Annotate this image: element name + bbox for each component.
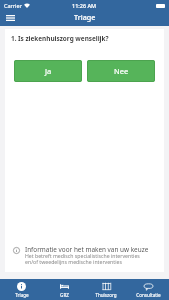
button[interactable]: GRZ [43, 279, 85, 300]
staticText: Het betreft medisch specialistische inte… [25, 252, 140, 265]
staticText: Thuiszorg [95, 292, 117, 298]
button[interactable]: Nee [87, 60, 155, 82]
staticText: Consultatie [136, 292, 161, 298]
staticText: Triage [74, 12, 96, 22]
button[interactable]: Triage [0, 279, 43, 300]
staticText: Ja [45, 66, 52, 76]
staticText: 1. Is ziekenhuiszorg wenselijk? [11, 34, 109, 43]
staticText: Carrier [4, 2, 22, 9]
staticText: Informatie voor het maken van uw keuze [25, 245, 149, 254]
button[interactable]: Open navigation menu [3, 12, 18, 26]
staticText: Nee [114, 66, 129, 76]
staticText: Triage [15, 292, 29, 298]
staticText: GRZ [60, 292, 69, 298]
button[interactable]: Thuiszorg [85, 279, 127, 300]
staticText: 11:26 AM [72, 2, 97, 9]
button[interactable]: Ja [14, 60, 82, 82]
button[interactable]: Consultatie [127, 279, 169, 300]
